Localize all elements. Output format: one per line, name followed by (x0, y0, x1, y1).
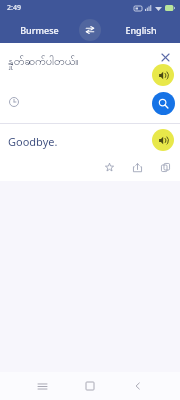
button[interactable]: Clear text (157, 49, 173, 65)
button[interactable]: Burmese (0, 16, 79, 43)
staticText: နှုတ်ဆက်ပါတယ်။ (8, 54, 79, 70)
button[interactable]: Swap languages (79, 19, 101, 41)
button[interactable]: Back (126, 374, 150, 398)
staticText: English (125, 24, 157, 36)
button[interactable]: History (5, 93, 23, 111)
staticText: 2:49 (7, 3, 21, 13)
button[interactable]: Copy (157, 159, 173, 175)
button[interactable]: Save to favorites (101, 159, 117, 175)
button[interactable]: Listen to source text (152, 64, 174, 86)
staticText: Goodbye. (8, 134, 58, 149)
button[interactable]: Search (152, 92, 175, 115)
button[interactable]: Home (78, 374, 102, 398)
button[interactable]: English (101, 16, 180, 43)
staticText: Burmese (20, 24, 59, 36)
button[interactable]: Share (129, 159, 145, 175)
button[interactable]: Listen to translation (152, 129, 174, 151)
button[interactable]: Recent apps (30, 374, 54, 398)
